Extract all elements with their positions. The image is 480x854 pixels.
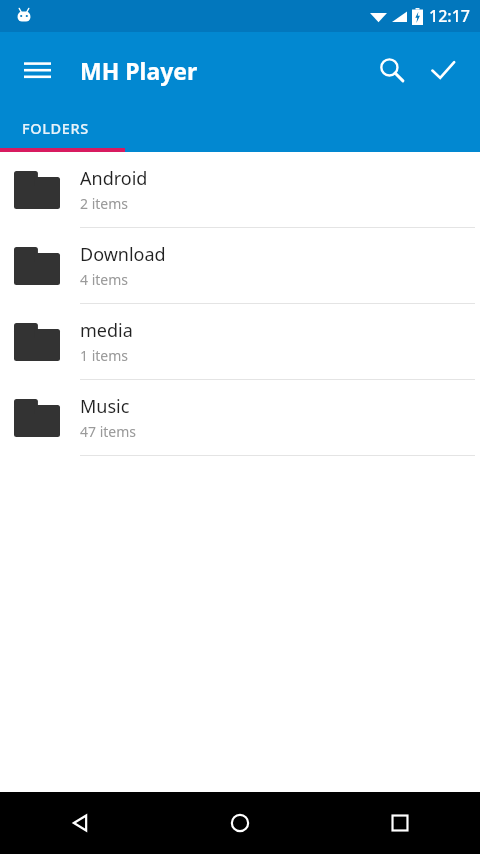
button[interactable]: Search bbox=[368, 46, 416, 94]
staticText: FOLDERS bbox=[22, 118, 89, 138]
button[interactable]: Back bbox=[0, 792, 160, 854]
button[interactable]: Confirm selection bbox=[419, 46, 467, 94]
button[interactable]: Home bbox=[160, 792, 320, 854]
staticText: Download bbox=[80, 242, 166, 267]
staticText: Android bbox=[80, 166, 148, 191]
button[interactable]: FOLDERS bbox=[0, 108, 125, 152]
button[interactable]: media bbox=[0, 304, 480, 380]
button[interactable]: Download bbox=[0, 228, 480, 304]
staticText: media bbox=[80, 318, 133, 343]
button[interactable]: Music bbox=[0, 380, 480, 456]
button[interactable]: Android bbox=[0, 152, 480, 228]
staticText: 1 items bbox=[80, 346, 129, 365]
staticText: 12:17 bbox=[429, 5, 470, 27]
staticText: Music bbox=[80, 394, 130, 419]
button[interactable]: Open navigation menu bbox=[13, 46, 61, 94]
staticText: 4 items bbox=[80, 270, 129, 289]
button[interactable]: Recent apps bbox=[320, 792, 480, 854]
staticText: MH Player bbox=[80, 55, 198, 86]
staticText: 47 items bbox=[80, 422, 137, 441]
staticText: 2 items bbox=[80, 194, 129, 213]
